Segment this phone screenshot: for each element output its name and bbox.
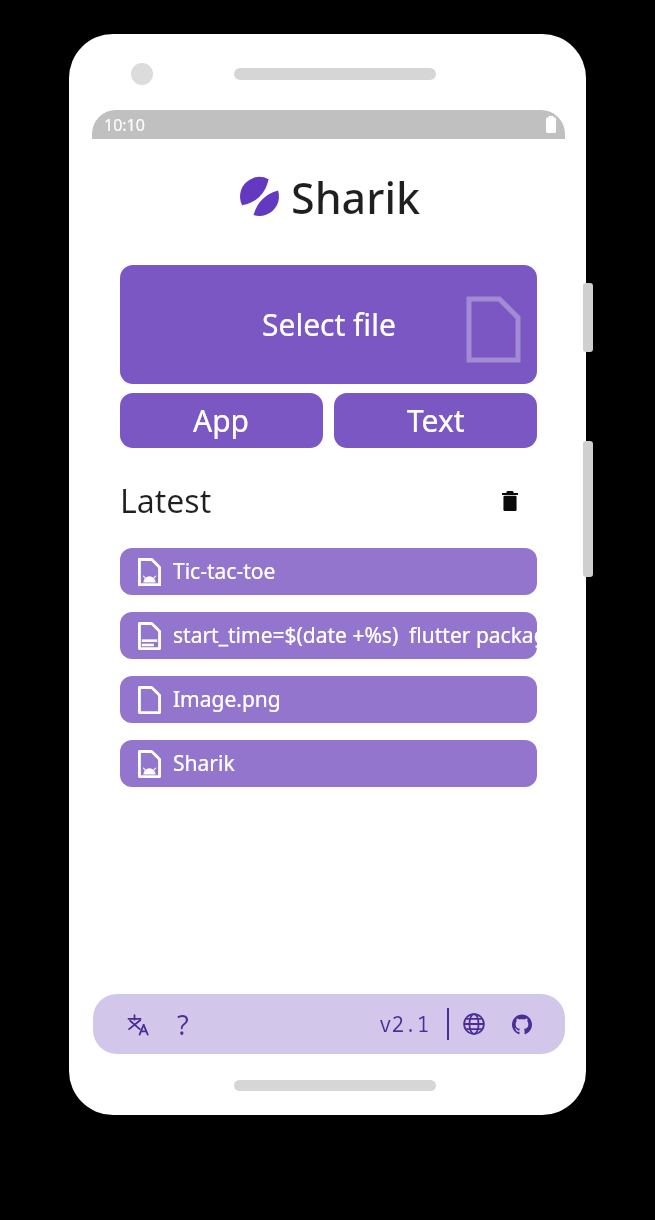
staticText: Latest [120, 479, 212, 523]
staticText: Sharik [173, 749, 235, 778]
staticText: Text [407, 400, 465, 441]
button[interactable]: Website [455, 1005, 493, 1043]
staticText: v2.1 [379, 1010, 430, 1039]
button[interactable]: Image.png [120, 676, 537, 723]
button[interactable]: Text [334, 393, 537, 448]
staticText: ? [177, 1006, 189, 1043]
button[interactable]: Sharik [120, 740, 537, 787]
staticText: Sharik [291, 168, 421, 227]
staticText: Image.png [173, 685, 281, 714]
staticText: 10:10 [104, 114, 145, 136]
button[interactable]: Help [164, 1005, 202, 1043]
button[interactable]: Tic-tac-toe [120, 548, 537, 595]
button[interactable]: App [120, 393, 323, 448]
button[interactable]: Select file [120, 265, 537, 384]
button[interactable]: GitHub [503, 1005, 541, 1043]
button[interactable]: Clear history [490, 481, 530, 521]
staticText: start_time=$(date +%s) flutter package [173, 621, 537, 650]
staticText: Tic-tac-toe [173, 557, 276, 586]
button[interactable]: start_time=$(date +%s) flutter package [120, 612, 537, 659]
staticText: App [193, 400, 250, 441]
button[interactable]: Language [119, 1005, 157, 1043]
staticText: Select file [262, 304, 396, 345]
